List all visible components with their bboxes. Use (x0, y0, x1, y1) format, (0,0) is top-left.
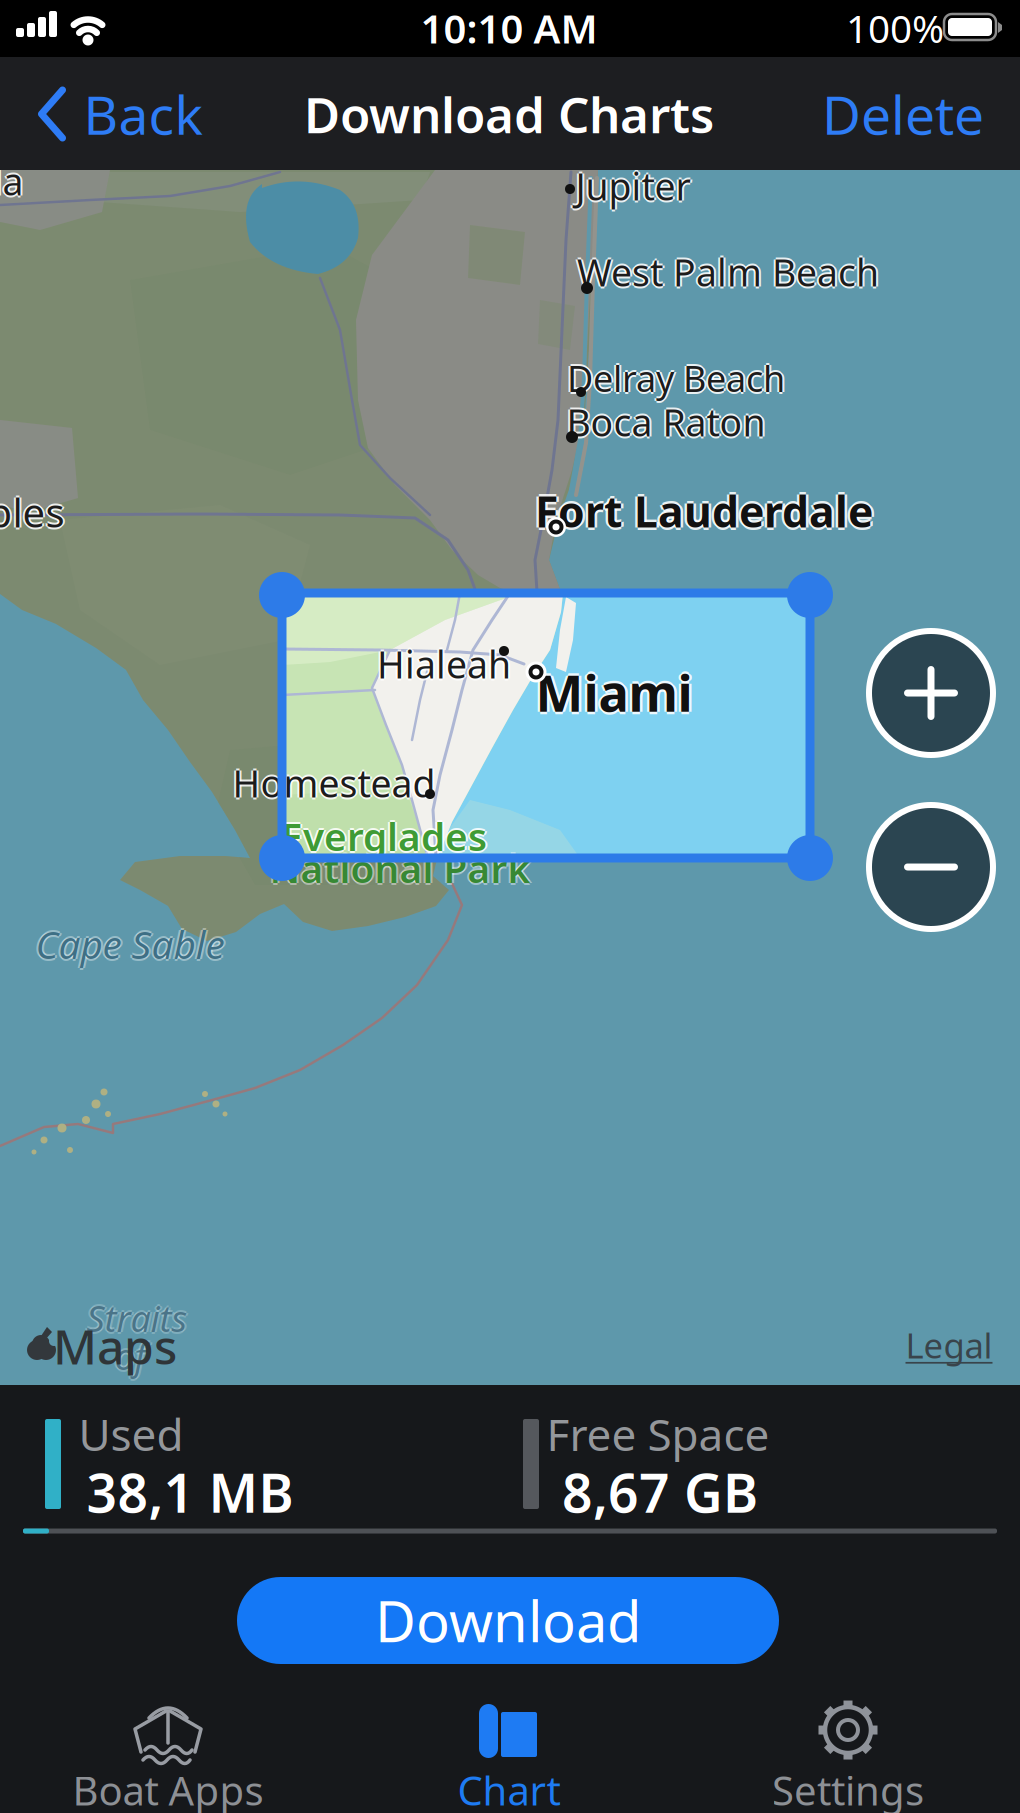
staticText: West Palm Beach (575, 247, 877, 297)
button[interactable] (865, 801, 997, 933)
staticText: Homestead (232, 760, 435, 810)
staticText: of (114, 1332, 145, 1380)
staticText: Used (78, 1405, 183, 1463)
staticText: ples (0, 485, 66, 538)
staticText: Everglades (281, 812, 487, 864)
staticText: Homestead (234, 758, 437, 808)
staticText: Download (375, 1583, 641, 1658)
staticText: 38,1 MB (86, 1457, 293, 1527)
staticText: Everglades (283, 810, 489, 862)
staticText: Miami (538, 658, 695, 726)
staticText: Boca Raton (566, 395, 765, 445)
staticText: Straits (86, 1296, 187, 1344)
staticText: Legal (905, 1322, 992, 1368)
staticText: Cape Sable (37, 918, 226, 970)
staticText: Jupiter (575, 163, 690, 213)
staticText: Jupiter (573, 161, 688, 211)
staticText: Miami (535, 661, 692, 728)
staticText: la (0, 156, 21, 206)
staticText: Delray Beach (567, 352, 785, 400)
staticText: Straits (84, 1294, 185, 1342)
staticText: Boca Raton (566, 397, 765, 447)
staticText: 10:10 AM (420, 1, 597, 54)
staticText: Boat Apps (72, 1763, 263, 1813)
staticText: Miami (535, 658, 692, 726)
staticText: Delray Beach (567, 354, 785, 402)
button[interactable]: Settings (698, 1692, 998, 1810)
button[interactable] (865, 627, 997, 759)
staticText: Hialeah (377, 639, 511, 689)
staticText: Delray Beach (569, 354, 787, 402)
staticText: 100% (846, 2, 944, 54)
button[interactable]: Back (25, 64, 215, 164)
staticText: West Palm Beach (579, 247, 881, 297)
staticText: Download Charts (304, 81, 714, 147)
staticText: Homestead (230, 758, 433, 808)
staticText: Straits (86, 1294, 187, 1342)
staticText: Delete (822, 79, 984, 149)
staticText: Cape Sable (35, 916, 224, 968)
staticText: ples (0, 483, 64, 536)
staticText: West Palm Beach (577, 247, 879, 297)
button[interactable]: Chart (359, 1692, 659, 1810)
staticText: Hialeah (379, 639, 513, 689)
staticText: Cape Sable (33, 918, 222, 970)
staticText: la (0, 156, 25, 206)
staticText: of (114, 1334, 145, 1382)
staticText: Everglades (281, 808, 487, 860)
button[interactable]: Download (237, 1577, 779, 1664)
staticText: Free Space (546, 1405, 769, 1463)
staticText: West Palm Beach (577, 249, 879, 299)
staticText: Boca Raton (564, 397, 763, 447)
staticText: National Park (269, 840, 530, 892)
staticText: Jupiter (575, 159, 690, 209)
staticText: Homestead (232, 756, 435, 806)
staticText: la (0, 154, 23, 204)
staticText: Straits (88, 1294, 189, 1342)
staticText: Chart (457, 1763, 560, 1813)
staticText: Fort Lauderdale (537, 483, 875, 539)
staticText: Fort Lauderdale (535, 483, 873, 539)
staticText: Delray Beach (567, 356, 785, 404)
staticText: Hialeah (377, 637, 511, 687)
staticText: Jupiter (575, 161, 690, 211)
staticText: ples (0, 485, 62, 538)
staticText: Jupiter (577, 161, 692, 211)
staticText: West Palm Beach (577, 245, 879, 295)
staticText: Boca Raton (566, 399, 765, 449)
staticText: National Park (271, 842, 532, 894)
staticText: la (0, 158, 23, 208)
staticText: Homestead (232, 758, 435, 808)
staticText: 8,67 GB (562, 1457, 758, 1527)
staticText: of (116, 1332, 147, 1380)
staticText: National Park (269, 844, 530, 896)
staticText: Boca Raton (568, 397, 767, 447)
button[interactable]: Delete (793, 64, 1013, 164)
staticText: Fort Lauderdale (535, 485, 873, 542)
staticText: Everglades (279, 810, 485, 862)
staticText: Straits (86, 1292, 187, 1340)
button[interactable]: Boat Apps (18, 1692, 318, 1810)
staticText: National Park (267, 842, 528, 894)
staticText: Hialeah (377, 641, 511, 691)
staticText: Miami (535, 656, 692, 723)
staticText: Delray Beach (565, 354, 783, 402)
staticText: Miami (533, 658, 690, 726)
staticText: Everglades (281, 810, 487, 862)
staticText: Back (83, 79, 202, 149)
staticText: of (112, 1332, 143, 1380)
staticText: Fort Lauderdale (532, 483, 870, 539)
staticText: ples (0, 485, 64, 538)
staticText: of (114, 1330, 145, 1378)
button[interactable]: Legal (905, 1322, 992, 1368)
staticText: National Park (269, 842, 530, 894)
staticText: Settings (772, 1763, 924, 1813)
staticText: Fort Lauderdale (535, 480, 873, 537)
staticText: Maps (53, 1314, 177, 1378)
staticText: Cape Sable (35, 920, 224, 972)
staticText: Cape Sable (35, 918, 224, 970)
staticText: la (0, 156, 23, 206)
staticText: ples (0, 487, 64, 540)
staticText: Hialeah (375, 639, 509, 689)
